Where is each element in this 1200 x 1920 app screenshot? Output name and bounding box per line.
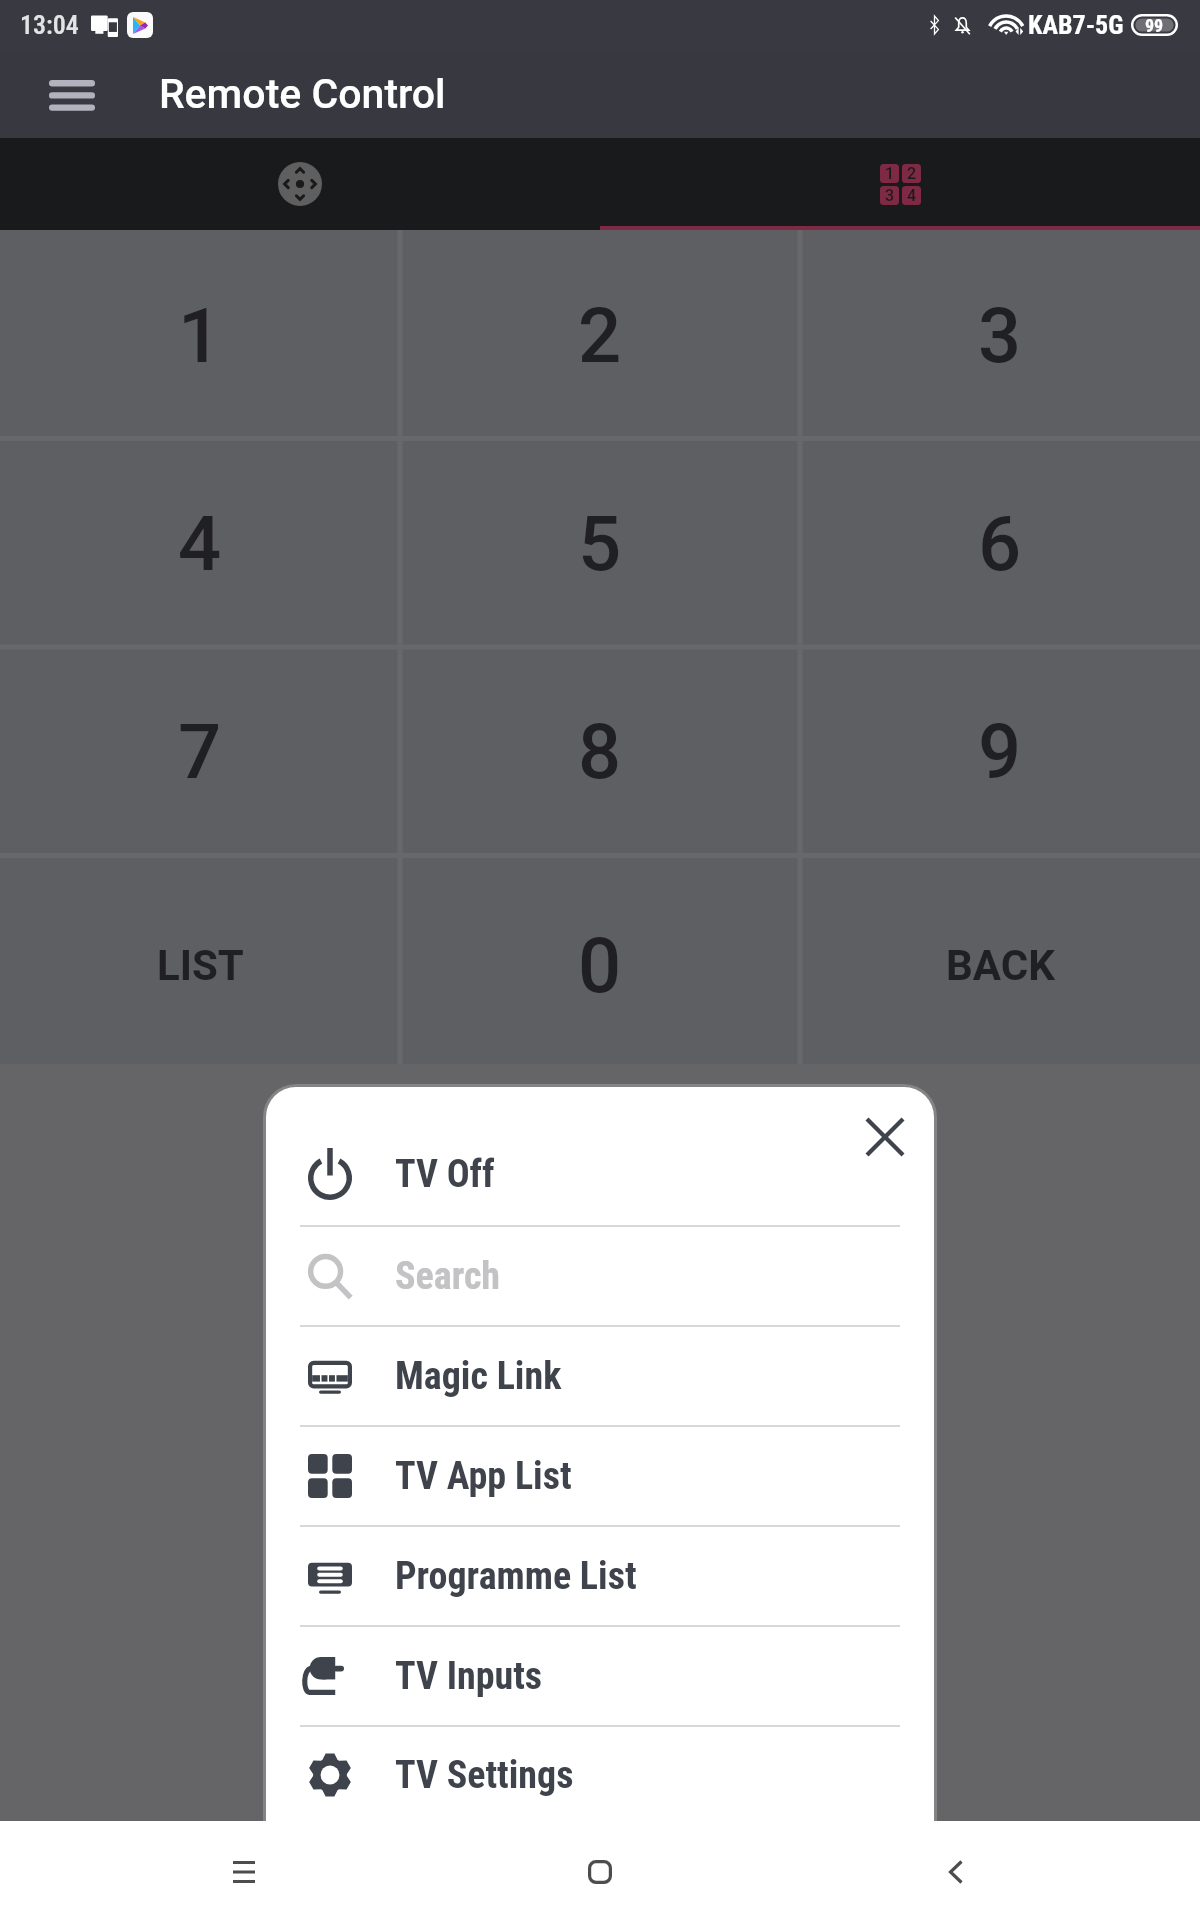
button[interactable]: Back <box>778 1823 1134 1920</box>
staticText: TV App List <box>395 1454 572 1499</box>
button[interactable]: Close <box>836 1088 934 1186</box>
staticText: 8 <box>578 707 622 796</box>
staticText: 7 <box>178 707 222 796</box>
staticText: BACK <box>946 941 1055 990</box>
staticText: Programme List <box>395 1554 637 1599</box>
button[interactable]: 0 <box>400 855 800 1064</box>
button[interactable]: Number keypad <box>600 138 1200 230</box>
button[interactable]: 8 <box>400 646 800 855</box>
button[interactable]: Direction pad <box>0 138 600 230</box>
button[interactable]: 1 <box>0 230 400 438</box>
staticText: 13:04 <box>20 10 79 40</box>
button[interactable]: 9 <box>800 646 1200 855</box>
staticText: 4 <box>907 186 917 205</box>
button[interactable]: 6 <box>800 438 1200 646</box>
button[interactable]: 2 <box>400 230 800 438</box>
staticText: 9 <box>978 707 1022 796</box>
staticText: Magic Link <box>395 1354 562 1399</box>
button[interactable]: TV App List <box>266 1427 934 1525</box>
staticText: TV Settings <box>395 1753 574 1798</box>
button[interactable]: TV Off <box>266 1123 934 1225</box>
staticText: 6 <box>978 499 1022 588</box>
button[interactable]: 5 <box>400 438 800 646</box>
staticText: 2 <box>578 291 622 380</box>
button[interactable]: TV Settings <box>266 1727 934 1823</box>
button[interactable]: Recent apps <box>66 1823 422 1920</box>
staticText: 2 <box>907 164 917 183</box>
button[interactable]: Open navigation menu <box>0 50 159 138</box>
button[interactable]: Home <box>422 1823 778 1920</box>
staticText: Search <box>395 1254 501 1299</box>
staticText: 0 <box>578 921 622 1010</box>
staticText: KAB7-5G <box>1028 10 1124 40</box>
button[interactable]: LIST <box>0 855 400 1064</box>
staticText: 4 <box>178 499 222 588</box>
staticText: TV Inputs <box>395 1654 543 1699</box>
staticText: 5 <box>578 499 622 588</box>
staticText: 99 <box>1145 15 1164 36</box>
staticText: LIST <box>157 941 244 990</box>
button[interactable]: 7 <box>0 646 400 855</box>
button[interactable]: Programme List <box>266 1527 934 1625</box>
button[interactable]: BACK <box>800 855 1200 1064</box>
staticText: 3 <box>978 291 1022 380</box>
staticText: 1 <box>178 291 222 380</box>
staticText: 3 <box>885 186 895 205</box>
button[interactable]: 4 <box>0 438 400 646</box>
staticText: 1 <box>885 164 895 183</box>
button[interactable]: 3 <box>800 230 1200 438</box>
button[interactable]: Magic Link <box>266 1327 934 1425</box>
staticText: Remote Control <box>159 70 446 118</box>
button[interactable]: TV Inputs <box>266 1627 934 1725</box>
button[interactable]: Search <box>266 1227 934 1325</box>
staticText: TV Off <box>395 1152 495 1197</box>
